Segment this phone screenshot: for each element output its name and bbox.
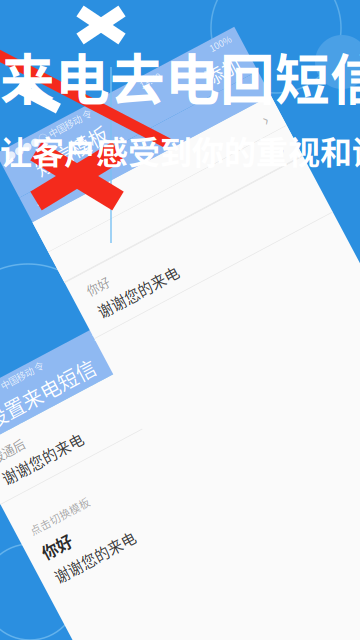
staticText: › [332, 147, 337, 173]
staticText: ← [92, 113, 115, 145]
staticText: 点击切换模板 [47, 459, 113, 475]
button[interactable]: Back [87, 115, 121, 143]
staticText: 谢谢您的来电 [47, 509, 137, 530]
staticText: 让客户感受到你的重视和诚意 [0, 127, 360, 173]
staticText: ●●●●○ [41, 318, 86, 332]
staticText: 短信模板 [109, 83, 189, 112]
staticText: 13:49 [240, 66, 263, 80]
staticText: ●●●●○ [89, 66, 134, 80]
staticText: 中国移动 令 [89, 318, 136, 332]
staticText: 添加 [301, 84, 339, 111]
staticText: 来电去电回短信 [0, 36, 360, 115]
button[interactable]: › [81, 143, 351, 177]
staticText: 你好 [97, 222, 121, 239]
staticText: 100% [319, 66, 343, 80]
button[interactable]: › [81, 177, 351, 211]
staticText: 谢谢您的来电 [47, 397, 137, 419]
staticText: 设置来电短信 [61, 335, 181, 364]
button[interactable]: 添加 [289, 81, 351, 115]
staticText: 拨通后 [47, 377, 83, 394]
staticText: 中国移动 令 [137, 66, 184, 80]
